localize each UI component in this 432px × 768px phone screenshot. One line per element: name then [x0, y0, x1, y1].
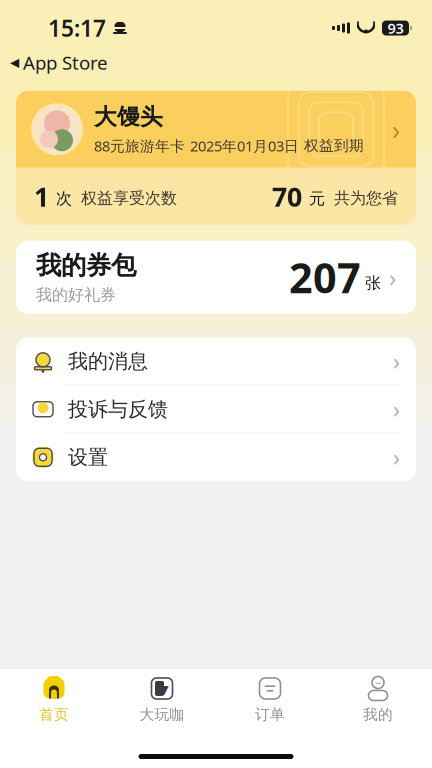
- staticText: ›: [393, 346, 400, 376]
- staticText: 2025年01月03日: [190, 136, 299, 155]
- staticText: App Store: [23, 50, 108, 75]
- button[interactable]: 投诉与反馈: [16, 386, 416, 433]
- staticText: ›: [393, 394, 400, 424]
- button[interactable]: 首页: [0, 674, 108, 724]
- button[interactable]: 我的消息: [16, 338, 416, 385]
- staticText: 207: [289, 250, 361, 305]
- staticText: 1: [34, 179, 49, 214]
- button[interactable]: 大馒头: [0, 91, 432, 225]
- staticText: 权益到期: [304, 137, 364, 155]
- button[interactable]: ⌣: [324, 674, 432, 724]
- staticText: 投诉与反馈: [68, 397, 168, 422]
- staticText: 权益享受次数: [81, 188, 177, 208]
- staticText: 张: [365, 273, 381, 293]
- staticText: 我的券包: [36, 250, 136, 281]
- staticText: 订单: [255, 705, 285, 723]
- staticText: ›: [389, 261, 396, 293]
- button[interactable]: ▼: [108, 674, 216, 724]
- button[interactable]: 订单: [216, 674, 324, 724]
- staticText: 共为您省: [334, 188, 398, 208]
- button[interactable]: 我的券包: [0, 241, 432, 314]
- staticText: ›: [392, 112, 400, 147]
- staticText: ›: [393, 442, 400, 472]
- staticText: 大玩咖: [139, 705, 184, 723]
- staticText: 70: [272, 179, 302, 214]
- staticText: 88元旅游年卡: [94, 136, 185, 155]
- staticText: 我的好礼券: [36, 285, 116, 305]
- button[interactable]: 设置: [16, 434, 416, 481]
- staticText: 次: [56, 189, 72, 209]
- staticText: 我的消息: [68, 349, 148, 374]
- staticText: 我的: [363, 705, 393, 723]
- staticText: ⌣: [374, 677, 381, 688]
- staticText: 设置: [68, 445, 108, 470]
- staticText: 首页: [39, 705, 69, 723]
- staticText: 元: [309, 189, 325, 209]
- button[interactable]: ◀: [0, 48, 108, 77]
- staticText: ▼: [159, 683, 168, 696]
- staticText: ◀: [10, 56, 19, 69]
- staticText: 93: [387, 18, 403, 38]
- staticText: 大馒头: [94, 103, 163, 131]
- staticText: 15:17: [48, 13, 106, 43]
